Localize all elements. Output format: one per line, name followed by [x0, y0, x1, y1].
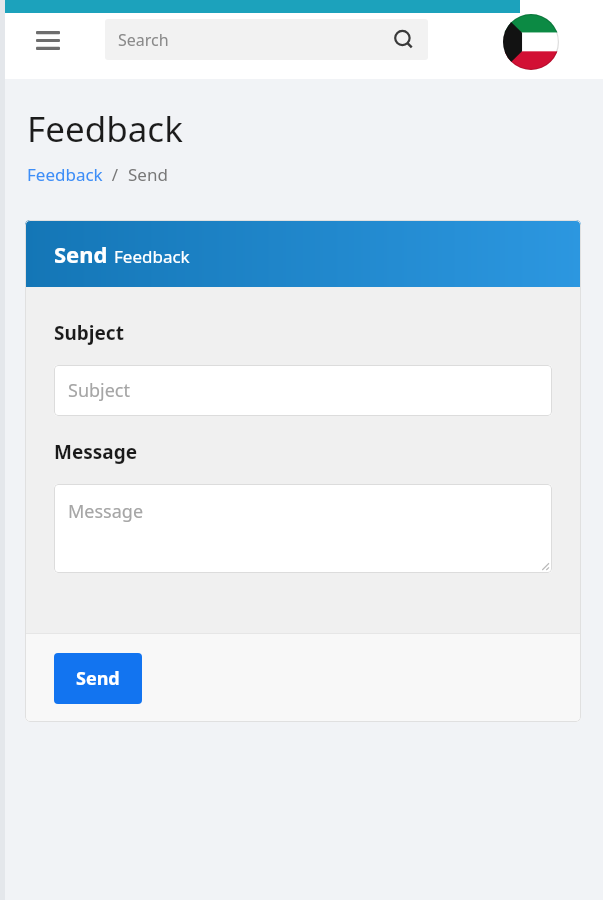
- staticText: Feedback: [27, 163, 103, 186]
- staticText: Send: [76, 666, 120, 691]
- staticText: /: [103, 163, 128, 186]
- button[interactable]: Feedback: [27, 163, 103, 186]
- staticText: Message: [54, 439, 138, 465]
- staticText: Feedback: [27, 105, 183, 153]
- button[interactable]: Account: [503, 14, 559, 70]
- button[interactable]: Send: [54, 653, 142, 704]
- button[interactable]: Subject: [54, 365, 552, 416]
- staticText: Feedback: [114, 245, 190, 268]
- button[interactable]: Menu: [26, 20, 70, 60]
- button[interactable]: Search: [105, 19, 428, 60]
- staticText: Send: [54, 239, 108, 269]
- staticText: Search: [118, 29, 169, 51]
- staticText: Subject: [54, 320, 124, 346]
- staticText: Message: [68, 499, 144, 524]
- button[interactable]: Message: [54, 484, 552, 573]
- staticText: Send: [128, 163, 168, 186]
- staticText: Subject: [68, 378, 131, 403]
